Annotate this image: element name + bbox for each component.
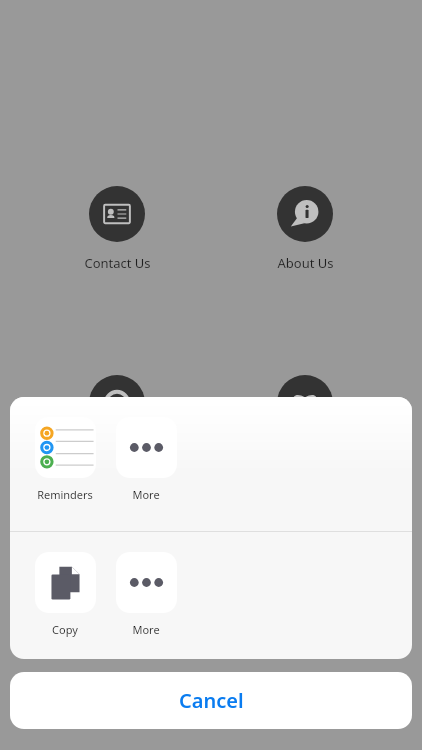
staticText: More: [132, 622, 160, 637]
staticText: More: [132, 487, 160, 502]
button[interactable]: Cancel: [10, 672, 412, 729]
button[interactable]: More: [115, 417, 177, 502]
button[interactable]: Services: [89, 375, 145, 431]
staticText: Cancel: [179, 687, 244, 714]
staticText: Contact Us: [84, 254, 151, 272]
button[interactable]: Contact Us: [62, 186, 172, 272]
button[interactable]: More: [115, 552, 177, 637]
staticText: Reminders: [37, 487, 93, 502]
button[interactable]: Favourites: [277, 375, 333, 431]
staticText: About Us: [277, 254, 334, 272]
staticText: Copy: [52, 622, 78, 637]
button[interactable]: Copy: [34, 552, 96, 637]
button[interactable]: About Us: [250, 186, 360, 272]
button[interactable]: Reminders: [34, 417, 96, 502]
